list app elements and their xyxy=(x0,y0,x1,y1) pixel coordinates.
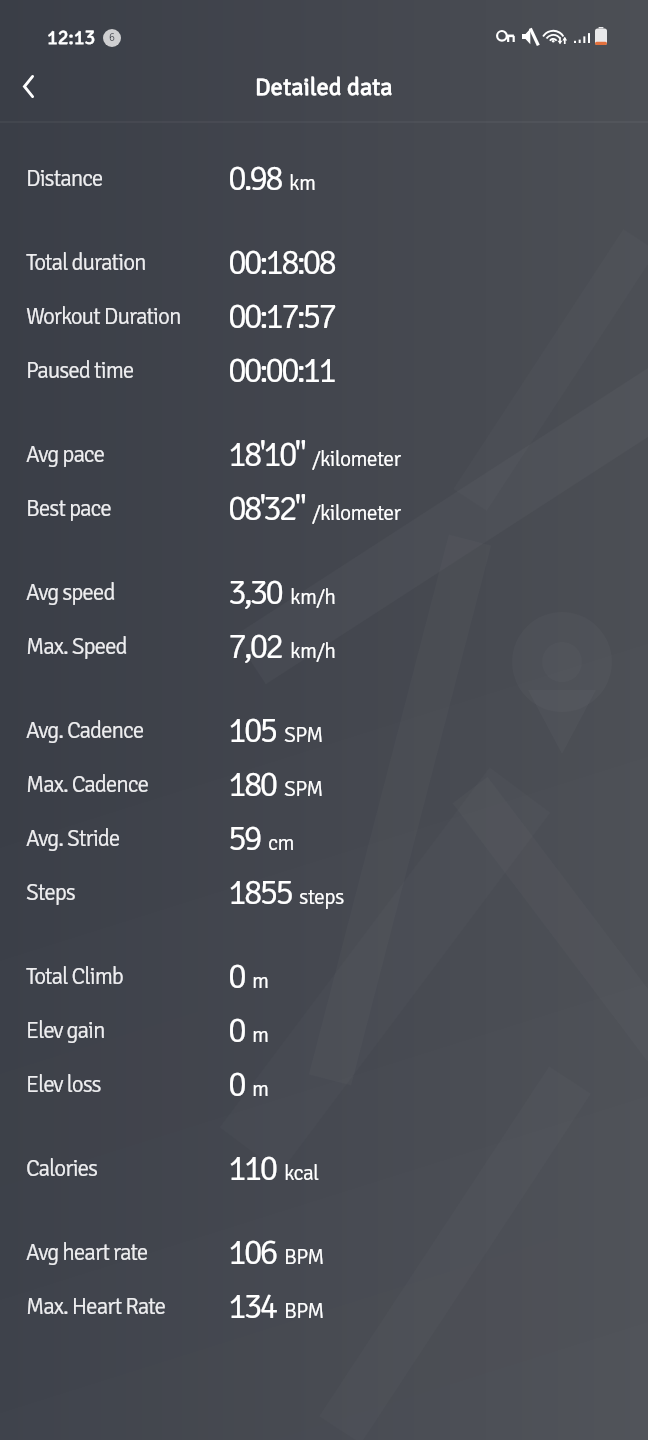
staticText: Max. Heart Rate xyxy=(26,1292,165,1320)
staticText: m xyxy=(252,968,269,994)
staticText: kcal xyxy=(284,1160,319,1186)
button[interactable]: Paused time xyxy=(0,343,648,397)
staticText: Total duration xyxy=(26,248,146,276)
staticText: 12:13 xyxy=(47,25,96,50)
button[interactable]: Max. Heart Rate xyxy=(0,1279,648,1333)
staticText: SPM xyxy=(284,722,323,748)
button[interactable]: Calories xyxy=(0,1141,648,1195)
staticText: Workout Duration xyxy=(26,302,181,330)
staticText: km/h xyxy=(290,584,336,610)
staticText: Paused time xyxy=(26,356,134,384)
staticText: 00:00:11 xyxy=(228,349,335,392)
button[interactable]: Avg heart rate xyxy=(0,1225,648,1279)
staticText: 105 xyxy=(228,709,276,752)
staticText: Elev loss xyxy=(26,1070,101,1098)
staticText: 106 xyxy=(228,1231,276,1274)
button[interactable]: Steps xyxy=(0,865,648,919)
staticText: 18'10" xyxy=(228,433,304,476)
staticText: 180 xyxy=(228,763,276,806)
button[interactable]: Avg. Cadence xyxy=(0,703,648,757)
button[interactable]: Avg pace xyxy=(0,427,648,481)
staticText: /kilometer xyxy=(312,500,401,526)
staticText: 00:18:08 xyxy=(228,241,335,284)
staticText: 08'32" xyxy=(228,487,304,530)
staticText: 6 xyxy=(109,31,115,45)
staticText: 1855 xyxy=(228,871,291,914)
staticText: Total Climb xyxy=(26,962,123,990)
staticText: steps xyxy=(299,884,344,910)
staticText: m xyxy=(252,1076,269,1102)
button[interactable]: Distance xyxy=(0,151,648,205)
button[interactable]: Avg. Stride xyxy=(0,811,648,865)
staticText: 00:17:57 xyxy=(228,295,335,338)
button[interactable]: Max. Speed xyxy=(0,619,648,673)
staticText: Avg speed xyxy=(26,578,115,606)
staticText: Steps xyxy=(26,878,75,906)
staticText: Best pace xyxy=(26,494,111,522)
staticText: Elev gain xyxy=(26,1016,105,1044)
button[interactable]: Elev gain xyxy=(0,1003,648,1057)
button[interactable]: Best pace xyxy=(0,481,648,535)
staticText: cm xyxy=(268,830,294,856)
staticText: Detailed data xyxy=(255,72,393,102)
staticText: km xyxy=(289,170,316,196)
staticText: Avg. Cadence xyxy=(26,716,144,744)
staticText: Avg. Stride xyxy=(26,824,120,852)
button[interactable]: Avg speed xyxy=(0,565,648,619)
button[interactable]: Total Climb xyxy=(0,949,648,1003)
button[interactable]: Back xyxy=(0,58,57,115)
staticText: Distance xyxy=(26,164,103,192)
staticText: 0 xyxy=(228,955,244,998)
staticText: 0 xyxy=(228,1063,244,1106)
staticText: 0.98 xyxy=(228,157,281,200)
staticText: Max. Cadence xyxy=(26,770,149,798)
staticText: BPM xyxy=(284,1298,324,1324)
staticText: 3,30 xyxy=(228,571,282,614)
staticText: km/h xyxy=(290,638,336,664)
staticText: Avg heart rate xyxy=(26,1238,148,1266)
staticText: SPM xyxy=(284,776,323,802)
staticText: 59 xyxy=(228,817,260,860)
button[interactable]: Max. Cadence xyxy=(0,757,648,811)
staticText: /kilometer xyxy=(312,446,401,472)
staticText: 134 xyxy=(228,1285,276,1328)
button[interactable]: Workout Duration xyxy=(0,289,648,343)
staticText: Calories xyxy=(26,1154,98,1182)
staticText: Avg pace xyxy=(26,440,105,468)
staticText: Max. Speed xyxy=(26,632,127,660)
staticText: 110 xyxy=(228,1147,276,1190)
staticText: 0 xyxy=(228,1009,244,1052)
staticText: BPM xyxy=(284,1244,324,1270)
button[interactable]: Elev loss xyxy=(0,1057,648,1111)
button[interactable]: Total duration xyxy=(0,235,648,289)
staticText: m xyxy=(252,1022,269,1048)
staticText: 7,02 xyxy=(228,625,282,668)
